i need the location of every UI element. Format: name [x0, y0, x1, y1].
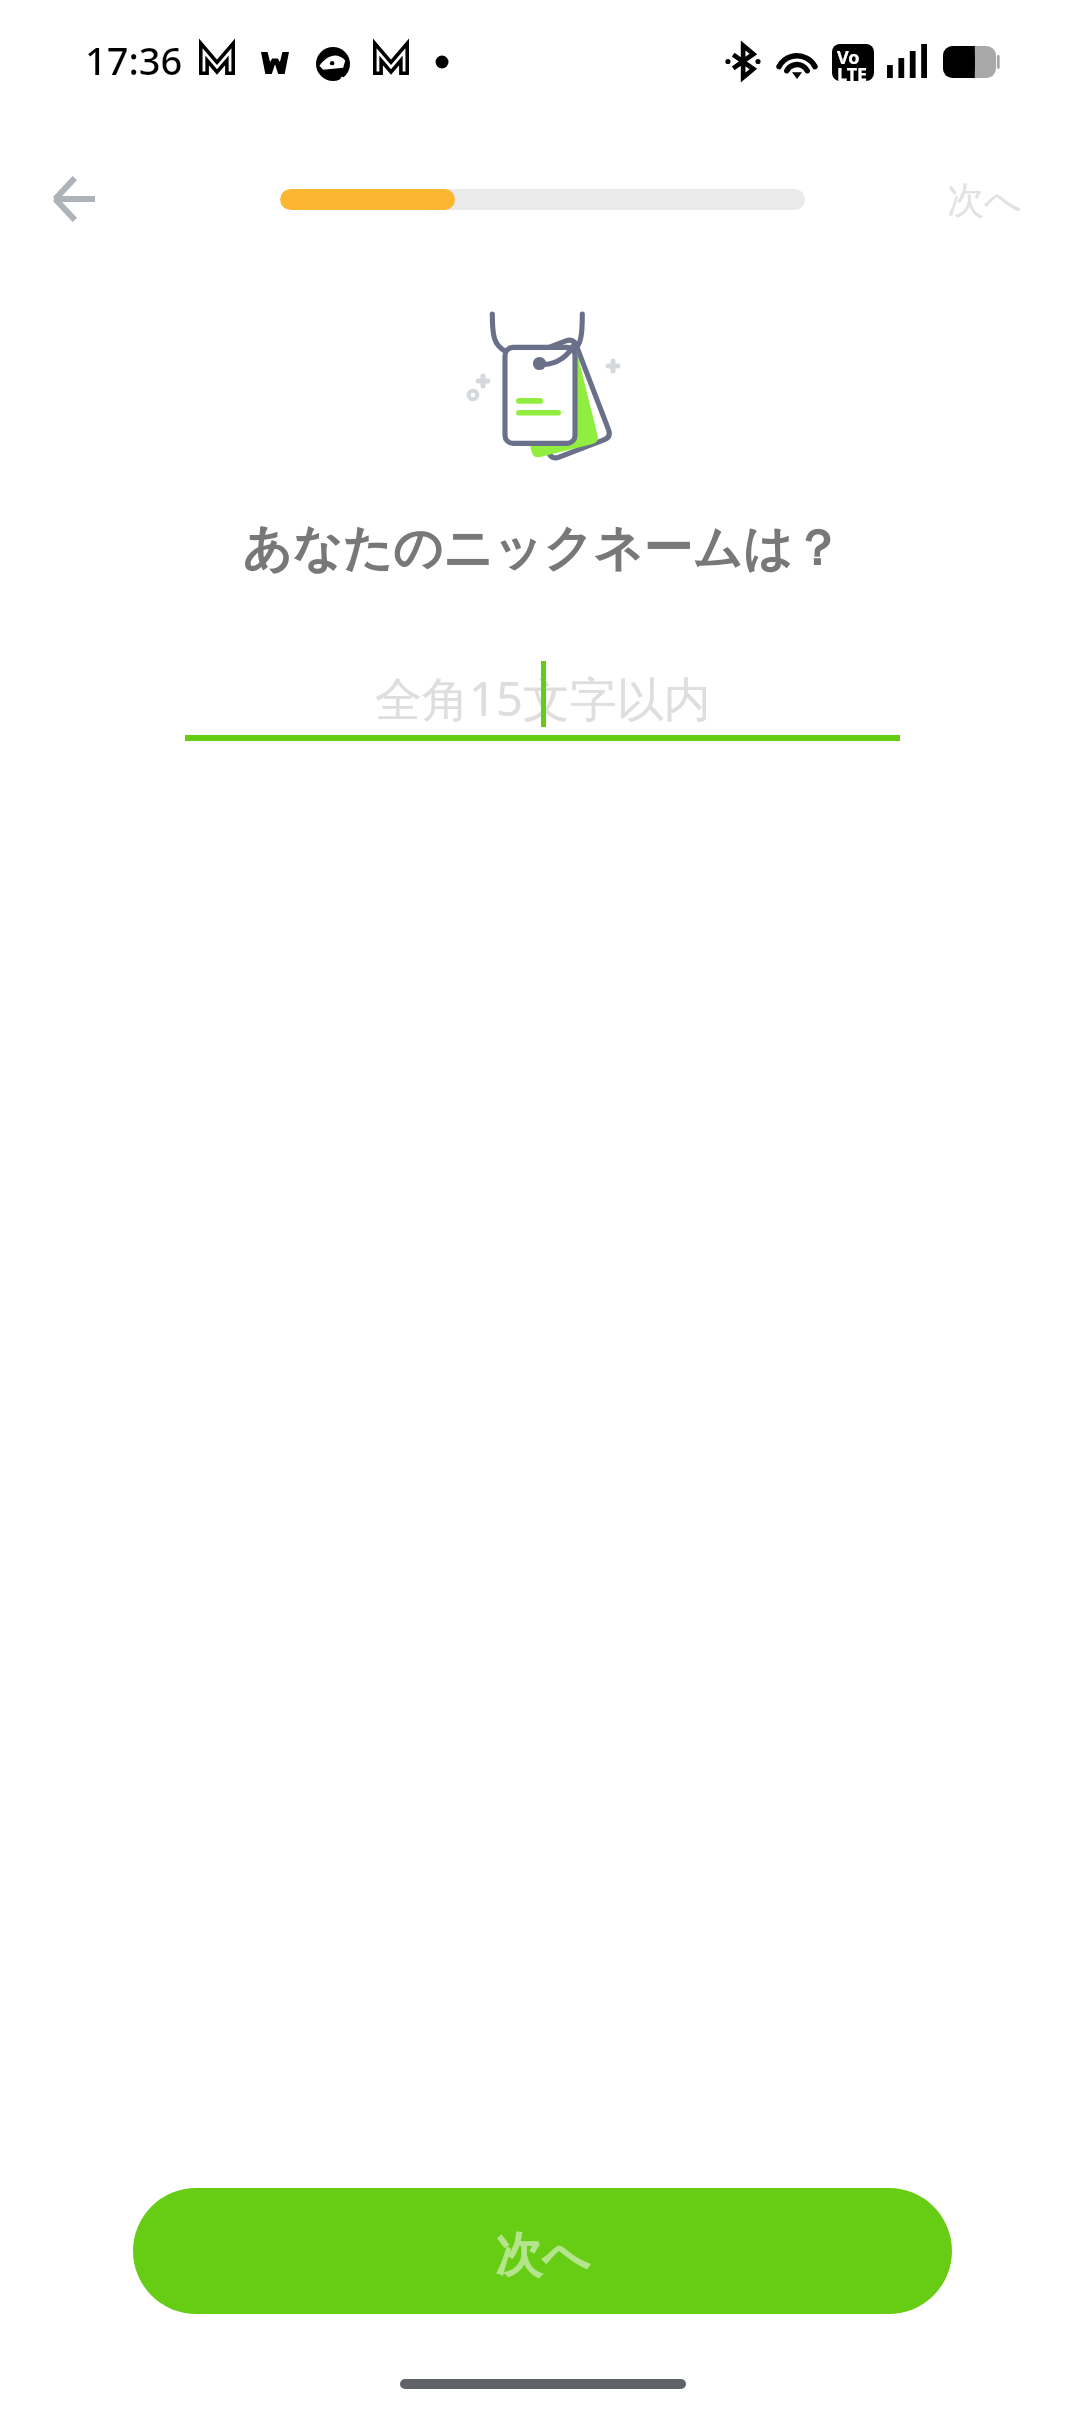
- button[interactable]: 次へ: [133, 2188, 952, 2314]
- staticText: 次へ: [495, 2226, 591, 2285]
- staticText: 全角15文字以内: [375, 666, 711, 730]
- button[interactable]: 全角15文字以内: [185, 660, 900, 741]
- staticText: Vo: [837, 45, 860, 70]
- button[interactable]: Back: [24, 149, 124, 249]
- staticText: 次へ: [947, 177, 1022, 224]
- staticText: あなたのニックネームは？: [0, 518, 1084, 580]
- staticText: LTE: [837, 62, 868, 81]
- staticText: 17:36: [85, 34, 183, 86]
- button[interactable]: 次へ: [924, 152, 1044, 248]
